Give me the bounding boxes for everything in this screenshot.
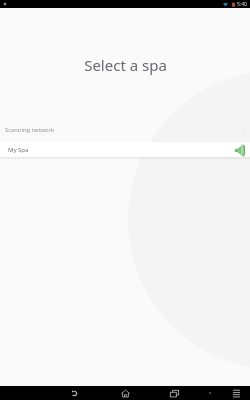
button[interactable]: My Spa bbox=[0, 142, 250, 157]
button[interactable]: Home bbox=[113, 386, 137, 400]
staticText: 5:40 bbox=[237, 1, 247, 8]
button[interactable]: Recent apps bbox=[162, 386, 186, 400]
button[interactable]: Assist bbox=[203, 386, 217, 400]
button[interactable]: Scanning network bbox=[0, 122, 250, 138]
staticText: Select a spa bbox=[84, 55, 167, 75]
staticText: Scanning network bbox=[5, 126, 55, 134]
button[interactable]: Back bbox=[62, 386, 86, 400]
staticText: My Spa bbox=[8, 146, 29, 154]
button[interactable]: Menu bbox=[227, 386, 245, 400]
